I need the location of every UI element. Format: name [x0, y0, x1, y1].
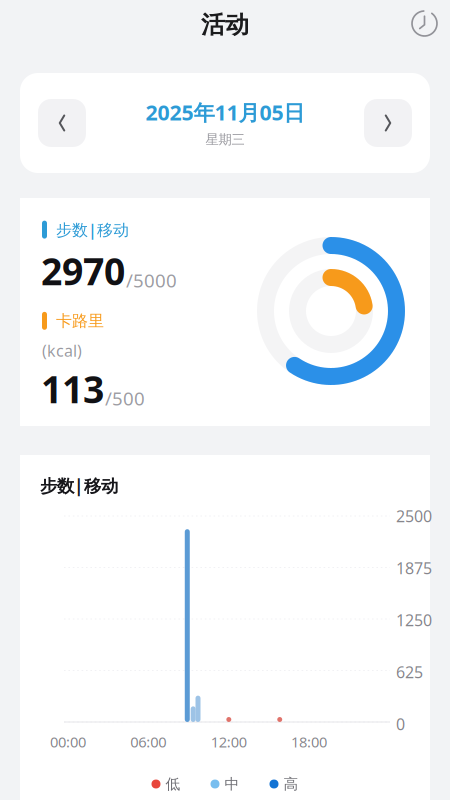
staticText: /5000 — [126, 268, 177, 293]
staticText: 卡路里 — [56, 311, 104, 331]
staticText: 18:00 — [291, 732, 327, 751]
staticText: 活动 — [201, 10, 249, 39]
staticText: 625 — [396, 661, 423, 683]
staticText: 1875 — [396, 557, 432, 579]
staticText: 2970 — [41, 246, 125, 296]
button[interactable]: Previous day — [38, 99, 86, 147]
staticText: 高 — [283, 775, 298, 793]
staticText: 0 — [396, 713, 405, 735]
staticText: 1250 — [396, 609, 432, 631]
staticText: 星期三 — [205, 131, 244, 148]
staticText: 2500 — [396, 505, 432, 527]
staticText: 113 — [41, 364, 104, 414]
staticText: /500 — [105, 386, 145, 411]
staticText: 00:00 — [50, 732, 86, 751]
button[interactable]: Next day — [364, 99, 412, 147]
staticText: 中 — [224, 775, 239, 793]
staticText: 12:00 — [211, 732, 247, 751]
staticText: 06:00 — [130, 732, 166, 751]
staticText: 步数|移动 — [56, 219, 129, 240]
staticText: 步数|移动 — [40, 474, 118, 497]
button[interactable]: History — [404, 3, 445, 44]
staticText: (kcal) — [42, 340, 82, 361]
staticText: 2025年11月05日 — [145, 98, 304, 126]
staticText: 低 — [165, 775, 180, 793]
